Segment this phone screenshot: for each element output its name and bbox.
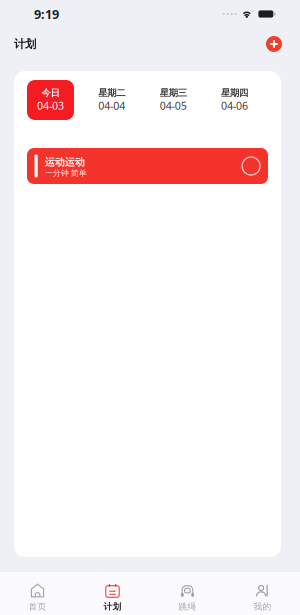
staticText: 我的: [253, 601, 271, 612]
staticText: 星期三: [160, 87, 187, 99]
button[interactable]: 今日: [27, 80, 74, 120]
button[interactable]: 星期三: [150, 80, 197, 120]
staticText: 一分钟 简单: [45, 168, 87, 178]
staticText: 04-06: [221, 99, 248, 113]
staticText: 今日: [41, 87, 59, 99]
button[interactable]: 星期二: [88, 80, 135, 120]
staticText: 04-03: [37, 99, 64, 113]
staticText: 跳绳: [178, 601, 196, 612]
staticText: 04-05: [160, 99, 187, 113]
button[interactable]: 计划: [75, 572, 150, 615]
button[interactable]: 首页: [0, 572, 75, 615]
staticText: 计划: [14, 37, 36, 51]
button[interactable]: 跳绳: [150, 572, 225, 615]
staticText: 星期二: [98, 87, 125, 99]
button[interactable]: 运动运动: [27, 148, 268, 184]
staticText: 04-04: [98, 99, 125, 113]
staticText: 星期四: [221, 87, 248, 99]
button[interactable]: 星期四: [211, 80, 258, 120]
staticText: 运动运动: [45, 156, 85, 168]
staticText: 计划: [103, 601, 121, 612]
staticText: 首页: [28, 601, 46, 612]
button[interactable]: 我的: [225, 572, 300, 615]
staticText: 9:19: [34, 6, 59, 22]
button[interactable]: Add plan: [260, 32, 288, 56]
